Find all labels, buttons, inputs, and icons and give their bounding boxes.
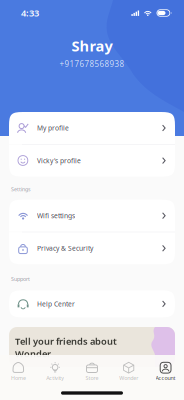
button[interactable]: Vicky's profile — [9, 145, 175, 177]
button[interactable]: My profile — [9, 112, 175, 144]
staticText: 4:33 — [21, 7, 39, 19]
button[interactable]: Wonder — [110, 359, 147, 383]
button[interactable]: Activity — [37, 359, 74, 383]
button[interactable]: Wifi settings — [9, 200, 175, 232]
button[interactable]: Privacy & Security — [9, 232, 175, 264]
staticText: Support — [11, 275, 30, 282]
staticText: Store — [85, 374, 98, 382]
staticText: Vicky's profile — [37, 156, 81, 165]
staticText: Account — [156, 374, 176, 382]
staticText: Home — [11, 374, 26, 382]
button[interactable]: Help Center — [9, 290, 175, 317]
button[interactable]: Account — [147, 359, 184, 383]
staticText: Shray — [71, 36, 112, 55]
staticText: Activity — [46, 374, 64, 382]
staticText: Tell your friends about Wonder — [15, 335, 117, 360]
staticText: Wonder — [119, 374, 138, 382]
staticText: +917678568938 — [59, 58, 124, 69]
staticText: Privacy & Security — [37, 244, 93, 253]
button[interactable]: Store — [74, 359, 110, 383]
staticText: My profile — [37, 124, 69, 132]
staticText: Settings — [11, 186, 31, 193]
button[interactable]: Tell your friends about Wonder — [0, 327, 184, 367]
staticText: Help Center — [37, 299, 75, 308]
staticText: Wifi settings — [37, 211, 75, 220]
button[interactable]: Home — [0, 359, 37, 383]
